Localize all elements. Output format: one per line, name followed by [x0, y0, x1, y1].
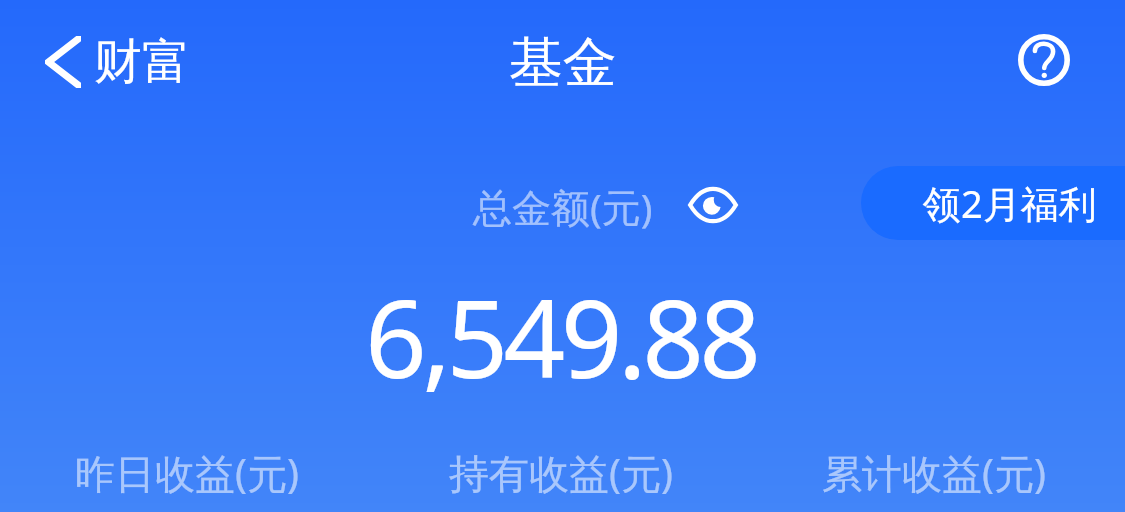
- button[interactable]: 持有收益(元): [374, 445, 747, 500]
- button[interactable]: Toggle amount visibility: [674, 173, 752, 237]
- button[interactable]: 财富: [0, 24, 208, 100]
- staticText: 基金: [509, 29, 617, 97]
- button[interactable]: 累计收益(元): [747, 445, 1120, 500]
- staticText: 财富: [94, 32, 190, 92]
- button[interactable]: 领2月福利: [861, 166, 1125, 240]
- button[interactable]: Help: [1008, 24, 1080, 96]
- staticText: 领2月福利: [923, 177, 1097, 229]
- staticText: 持有收益(元): [449, 445, 673, 500]
- staticText: 累计收益(元): [822, 445, 1046, 500]
- staticText: 昨日收益(元): [75, 445, 299, 500]
- staticText: 总金额(元): [473, 180, 653, 233]
- button[interactable]: 昨日收益(元): [0, 445, 374, 500]
- staticText: 6,549.88: [365, 263, 757, 410]
